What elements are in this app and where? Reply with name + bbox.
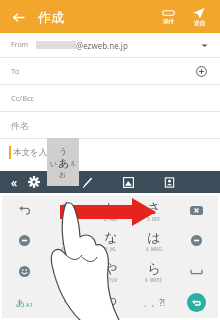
button[interactable]: Undo [2, 195, 46, 225]
button[interactable]: Cursor right [175, 225, 218, 256]
button[interactable]: 本文を入力 [0, 139, 220, 165]
button[interactable]: Backspace [175, 195, 218, 225]
button[interactable]: あ [46, 195, 89, 225]
button[interactable]: 件名 [0, 112, 220, 138]
staticText: 送信 [194, 20, 205, 27]
button[interactable]: Switch input mode [2, 287, 46, 318]
button[interactable]: た [46, 225, 89, 256]
button[interactable]: ま [46, 256, 89, 287]
staticText: ら [147, 260, 161, 276]
staticText: 3 DEF [147, 216, 161, 222]
button[interactable]: Add recipient from contacts [194, 64, 209, 79]
button[interactable]: Back [7, 6, 29, 28]
button[interactable]: か [89, 195, 132, 225]
staticText: や [104, 260, 118, 276]
button[interactable]: ら [132, 256, 175, 287]
staticText: い [50, 159, 58, 168]
button[interactable]: Handwriting [76, 171, 98, 193]
button[interactable]: や [89, 256, 132, 287]
staticText: さ [147, 199, 161, 215]
staticText: 「」 [60, 298, 76, 308]
staticText: か [104, 199, 118, 215]
button[interactable]: Emoji [2, 256, 46, 287]
button[interactable]: Collapse toolbar [4, 172, 24, 192]
staticText: は [147, 229, 161, 245]
button[interactable]: わ [89, 287, 132, 318]
staticText: 4 GHI [61, 246, 75, 252]
staticText: 、。?! [143, 297, 165, 308]
staticText: 件名 [11, 120, 29, 131]
button[interactable]: Contacts [158, 171, 180, 193]
staticText: あ [61, 199, 75, 215]
staticText: « [11, 174, 18, 190]
staticText: To [11, 66, 20, 76]
button[interactable]: Settings [24, 172, 44, 192]
button[interactable]: 添付 [154, 0, 182, 33]
staticText: A1 [26, 301, 33, 308]
button[interactable]: Enter [175, 287, 218, 318]
staticText: わ [104, 291, 118, 307]
staticText: 本文を入力 [13, 147, 56, 158]
staticText: @ezweb.ne.jp [76, 40, 128, 51]
staticText: 5 JKL [105, 246, 117, 252]
staticText: 作成 [38, 9, 64, 25]
button[interactable]: Space [175, 256, 218, 287]
staticText: あ [16, 297, 26, 308]
button[interactable]: Insert image [117, 171, 139, 193]
staticText: お [59, 170, 67, 179]
staticText: た [61, 229, 75, 245]
button[interactable]: 「」 [46, 287, 89, 318]
button[interactable]: Cc/Bcc [0, 85, 220, 111]
staticText: Cc/Bcc [11, 93, 35, 103]
staticText: 6 MNO [146, 246, 162, 252]
staticText: あ [58, 156, 70, 170]
button[interactable]: 、。?! [132, 287, 175, 318]
staticText: え [70, 159, 77, 167]
button[interactable]: From [0, 33, 220, 57]
button[interactable]: さ [132, 195, 175, 225]
staticText: 9 WXYZ [145, 277, 162, 283]
staticText: 2 ABC [104, 216, 118, 222]
staticText: From [11, 40, 29, 50]
button[interactable]: 送信 [185, 0, 213, 33]
button[interactable]: Cursor left [2, 225, 46, 256]
staticText: 添付 [163, 18, 174, 25]
staticText: 8 TUV [104, 277, 118, 283]
button[interactable]: は [132, 225, 175, 256]
button[interactable]: な [89, 225, 132, 256]
button[interactable]: To [0, 58, 220, 84]
staticText: う [59, 146, 68, 156]
staticText: な [104, 229, 118, 245]
